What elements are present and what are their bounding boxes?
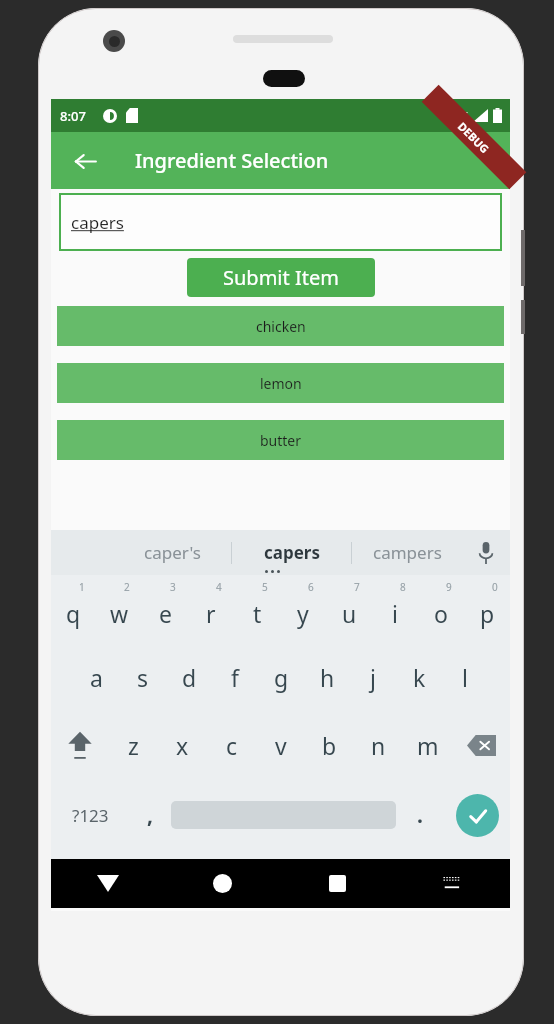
staticText: , [147, 801, 153, 830]
staticText: capers [71, 211, 124, 234]
button[interactable]: butter [57, 420, 504, 460]
staticText: chicken [256, 317, 306, 336]
button[interactable]: capers [59, 193, 502, 251]
button[interactable]: m [403, 711, 452, 779]
staticText: j [370, 662, 376, 693]
button[interactable]: Enter [456, 794, 499, 837]
staticText: 3 [170, 580, 176, 594]
staticText: Submit Item [223, 264, 339, 291]
staticText: l [462, 662, 468, 693]
button[interactable]: 9 [418, 575, 464, 643]
button[interactable]: ?123 [51, 779, 129, 851]
button[interactable]: v [256, 711, 305, 779]
button[interactable]: s [120, 643, 166, 711]
staticText: o [434, 598, 448, 629]
button[interactable]: 6 [280, 575, 326, 643]
staticText: ?123 [72, 804, 109, 827]
staticText: i [392, 598, 398, 629]
button[interactable]: a [73, 643, 120, 711]
button[interactable]: l [442, 643, 488, 711]
button[interactable]: 2 [96, 575, 142, 643]
staticText: 4 [216, 580, 222, 594]
button[interactable]: Voice input [462, 530, 510, 575]
staticText: Ingredient Selection [135, 147, 329, 174]
staticText: capers [264, 541, 320, 564]
button[interactable]: 0 [464, 575, 510, 643]
button[interactable]: , [129, 779, 171, 851]
staticText: t [253, 598, 262, 629]
staticText: e [159, 598, 172, 629]
button[interactable]: h [304, 643, 350, 711]
button[interactable]: Backspace [452, 711, 510, 779]
staticText: 2 [124, 580, 130, 594]
button[interactable]: j [350, 643, 396, 711]
button[interactable]: 5 [234, 575, 280, 643]
staticText: k [413, 662, 426, 693]
staticText: 9 [446, 580, 452, 594]
button[interactable]: Recents [280, 859, 395, 908]
button[interactable]: d [166, 643, 212, 711]
staticText: 5 [262, 580, 268, 594]
button[interactable]: g [258, 643, 304, 711]
button[interactable]: Back [51, 859, 165, 908]
button[interactable]: 1 [51, 575, 96, 643]
staticText: d [182, 662, 197, 693]
button[interactable]: c [207, 711, 256, 779]
staticText: caper's [144, 541, 201, 564]
staticText: a [90, 662, 103, 693]
staticText: DEBUG [455, 119, 492, 156]
button[interactable]: 8 [372, 575, 418, 643]
button[interactable]: chicken [57, 306, 504, 346]
staticText: 8:07 [60, 107, 86, 125]
button[interactable]: capers [232, 530, 351, 575]
staticText: y [297, 598, 309, 629]
staticText: n [371, 730, 386, 761]
button[interactable]: Shift [51, 711, 109, 779]
button[interactable]: n [354, 711, 403, 779]
staticText: 7 [354, 580, 360, 594]
staticText: w [110, 598, 129, 629]
staticText: lemon [260, 374, 302, 393]
staticText: m [417, 730, 439, 761]
button[interactable]: 3 [142, 575, 188, 643]
button[interactable]: . [396, 779, 444, 851]
button[interactable]: 7 [326, 575, 372, 643]
staticText: f [231, 662, 239, 693]
staticText: c [226, 730, 238, 761]
staticText: v [275, 730, 287, 761]
staticText: 0 [492, 580, 498, 594]
button[interactable]: Submit Item [187, 258, 375, 297]
button[interactable]: k [396, 643, 442, 711]
button[interactable]: Switch keyboard [395, 859, 510, 908]
button[interactable]: z [109, 711, 158, 779]
staticText: z [128, 730, 139, 761]
button[interactable]: x [158, 711, 207, 779]
button[interactable]: b [305, 711, 354, 779]
staticText: campers [373, 541, 442, 564]
button[interactable]: Home [165, 859, 280, 908]
staticText: g [274, 662, 289, 693]
staticText: q [66, 598, 81, 629]
staticText: u [342, 598, 357, 629]
button[interactable]: f [212, 643, 258, 711]
staticText: 6 [308, 580, 314, 594]
staticText: 1 [79, 580, 85, 594]
staticText: . [417, 801, 423, 830]
button[interactable]: campers [352, 530, 462, 575]
staticText: p [480, 598, 495, 629]
staticText: 8 [400, 580, 406, 594]
staticText: b [322, 730, 337, 761]
button[interactable]: 4 [188, 575, 234, 643]
staticText: h [320, 662, 335, 693]
staticText: x [176, 730, 189, 761]
button[interactable]: Back [65, 141, 105, 181]
staticText: butter [260, 431, 302, 450]
button[interactable]: caper's [113, 530, 231, 575]
staticText: r [206, 598, 216, 629]
button[interactable]: lemon [57, 363, 504, 403]
staticText: s [137, 662, 149, 693]
